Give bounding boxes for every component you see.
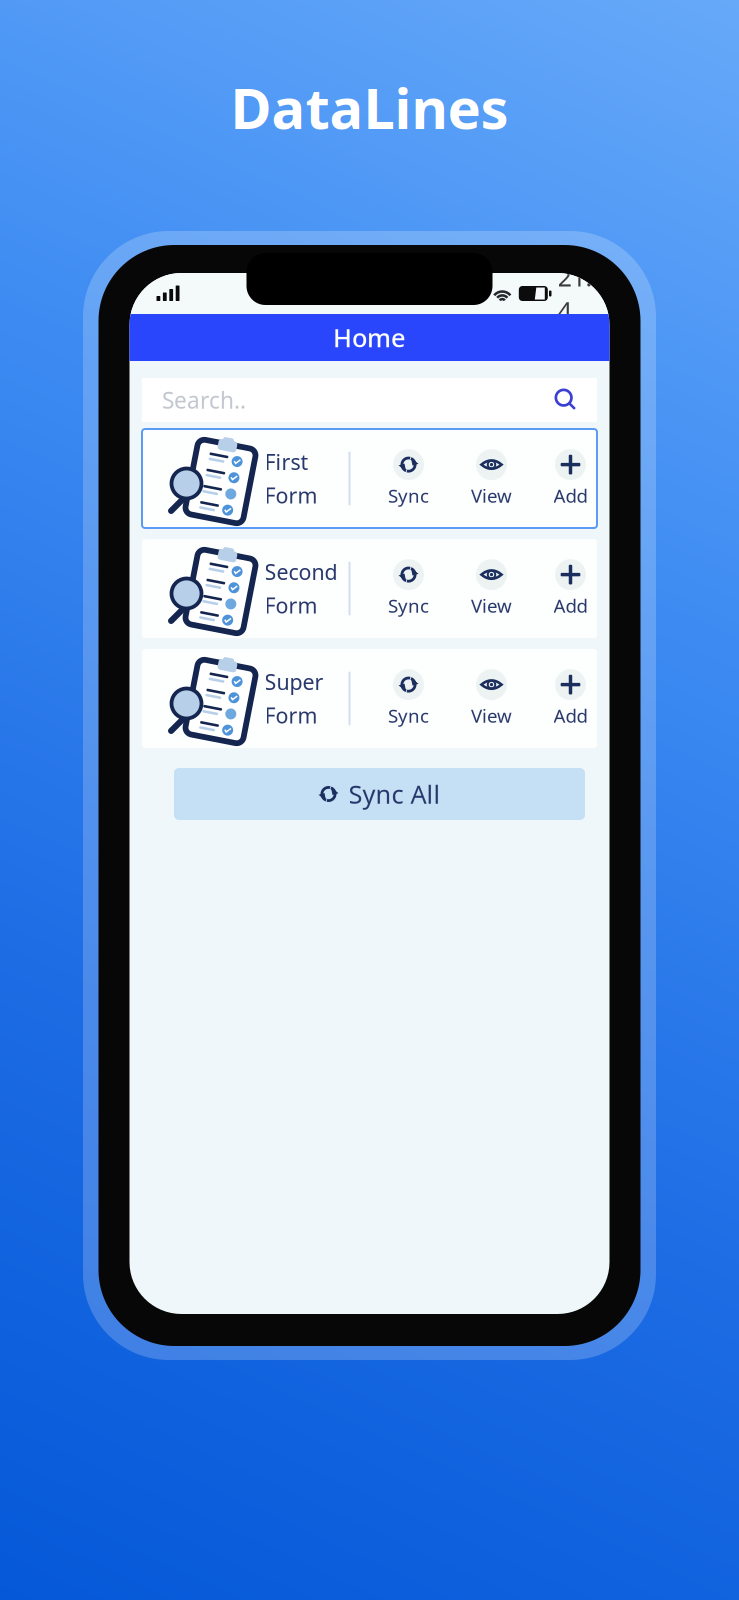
button[interactable]: View: [456, 447, 526, 509]
staticText: View: [471, 483, 512, 508]
button[interactable]: Sync: [373, 447, 443, 509]
staticText: Sync: [388, 703, 429, 728]
button[interactable]: Second: [142, 539, 597, 638]
staticText: Search..: [162, 385, 246, 415]
button[interactable]: View: [456, 557, 526, 619]
staticText: Sync: [388, 483, 429, 508]
button[interactable]: Search: [553, 387, 597, 413]
staticText: Super: [264, 668, 323, 696]
staticText: View: [471, 703, 512, 728]
staticText: Form: [264, 481, 317, 509]
staticText: 21:34: [557, 260, 606, 327]
button[interactable]: Sync All: [174, 768, 585, 820]
button[interactable]: Super: [142, 649, 597, 748]
staticText: Second: [264, 558, 337, 586]
button[interactable]: Sync: [373, 557, 443, 619]
button[interactable]: Add: [535, 667, 605, 729]
button[interactable]: First: [142, 429, 597, 528]
staticText: Sync: [388, 593, 429, 618]
staticText: View: [471, 593, 512, 618]
staticText: Sync All: [348, 777, 440, 811]
button[interactable]: Add: [535, 557, 605, 619]
staticText: DataLines: [230, 70, 508, 144]
staticText: Form: [264, 591, 317, 619]
staticText: Home: [333, 321, 406, 354]
button[interactable]: Sync: [373, 667, 443, 729]
staticText: First: [264, 448, 308, 476]
staticText: Add: [553, 593, 587, 618]
staticText: Form: [264, 701, 317, 729]
staticText: Add: [553, 703, 587, 728]
staticText: Add: [553, 483, 587, 508]
button[interactable]: View: [456, 667, 526, 729]
button[interactable]: Add: [535, 447, 605, 509]
